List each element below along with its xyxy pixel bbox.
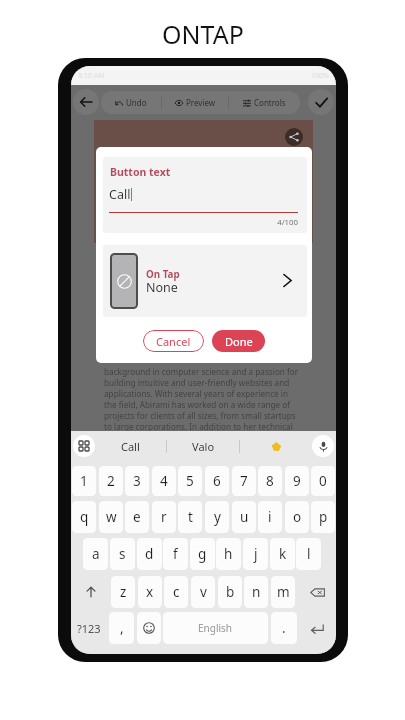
button[interactable]: z bbox=[111, 576, 135, 608]
button[interactable]: o bbox=[285, 501, 309, 533]
button[interactable]: t bbox=[178, 501, 202, 533]
button[interactable]: Valo bbox=[167, 431, 239, 461]
button[interactable]: Enter bbox=[299, 612, 335, 644]
staticText: m bbox=[277, 583, 290, 601]
staticText: c bbox=[173, 583, 180, 601]
staticText: y bbox=[214, 508, 221, 526]
button[interactable]: x bbox=[138, 576, 162, 608]
button[interactable]: Shift bbox=[73, 576, 108, 608]
staticText: Preview bbox=[186, 97, 216, 108]
button[interactable]: j bbox=[243, 538, 268, 570]
button[interactable]: Preview bbox=[162, 91, 228, 114]
button[interactable]: 4 bbox=[152, 466, 176, 496]
button[interactable]: 6 bbox=[205, 466, 229, 496]
staticText: s bbox=[119, 545, 126, 563]
button[interactable]: s bbox=[110, 538, 135, 570]
button[interactable]: 0 bbox=[311, 466, 335, 496]
button[interactable]: g bbox=[190, 538, 215, 570]
staticText: b bbox=[226, 583, 235, 601]
staticText: 6 bbox=[213, 472, 221, 490]
button[interactable]: Emoji bbox=[137, 612, 161, 644]
staticText: z bbox=[120, 583, 127, 601]
staticText: e bbox=[133, 508, 141, 526]
button[interactable]: Done bbox=[212, 330, 265, 352]
staticText: 5 bbox=[186, 472, 194, 490]
button[interactable]: m bbox=[271, 576, 295, 608]
staticText: n bbox=[252, 583, 261, 601]
staticText: None bbox=[146, 279, 178, 296]
staticText: 2 bbox=[107, 472, 115, 490]
button[interactable]: Share bbox=[285, 128, 303, 146]
staticText: Undo bbox=[126, 97, 147, 108]
staticText: 8 bbox=[266, 472, 274, 490]
staticText: Valo bbox=[192, 439, 215, 454]
staticText: o bbox=[293, 508, 302, 526]
staticText: Done bbox=[225, 334, 253, 349]
button[interactable]: l bbox=[296, 538, 321, 570]
button[interactable]: On Tap bbox=[103, 245, 307, 317]
button[interactable]: 7 bbox=[232, 466, 256, 496]
button[interactable]: i bbox=[258, 501, 282, 533]
staticText: l bbox=[307, 545, 311, 563]
button[interactable]: Undo bbox=[101, 91, 161, 114]
button[interactable]: e bbox=[125, 501, 149, 533]
button[interactable]: Back bbox=[73, 89, 99, 115]
button[interactable]: . bbox=[271, 612, 297, 644]
staticText: x bbox=[146, 583, 154, 601]
button[interactable]: r bbox=[152, 501, 176, 533]
button[interactable]: v bbox=[191, 576, 215, 608]
staticText: 100% bbox=[311, 71, 329, 81]
button[interactable]: 2 bbox=[99, 466, 123, 496]
button[interactable]: d bbox=[137, 538, 162, 570]
button[interactable]: 3 bbox=[125, 466, 149, 496]
button[interactable]: p bbox=[311, 501, 335, 533]
button[interactable]: , bbox=[109, 612, 134, 644]
button[interactable]: q bbox=[72, 501, 96, 533]
button[interactable]: Voice input bbox=[312, 435, 334, 457]
staticText: q bbox=[80, 508, 89, 526]
button[interactable]: ?123 bbox=[72, 612, 106, 644]
button[interactable]: 8 bbox=[258, 466, 282, 496]
staticText: t bbox=[188, 508, 193, 526]
button[interactable]: k bbox=[270, 538, 295, 570]
button[interactable]: Call bbox=[95, 431, 166, 461]
button[interactable]: y bbox=[205, 501, 229, 533]
staticText: Cancel bbox=[156, 334, 191, 349]
button[interactable]: b bbox=[218, 576, 242, 608]
button[interactable]: w bbox=[99, 501, 123, 533]
staticText: w bbox=[106, 508, 117, 526]
staticText: English bbox=[198, 621, 233, 635]
button[interactable]: 5 bbox=[178, 466, 202, 496]
staticText: applications. With several years of expe… bbox=[104, 388, 288, 399]
button[interactable]: Backspace bbox=[299, 576, 335, 608]
staticText: On Tap bbox=[146, 268, 180, 281]
staticText: 0 bbox=[319, 472, 327, 490]
button[interactable]: Clipboard bbox=[73, 435, 95, 457]
button[interactable]: Confirm bbox=[308, 89, 334, 115]
staticText: to large corporations. In addition to he… bbox=[104, 421, 293, 432]
button[interactable]: 9 bbox=[285, 466, 309, 496]
staticText: j bbox=[254, 545, 258, 563]
staticText: v bbox=[200, 583, 207, 601]
staticText: the field, Abirami has worked on a wide … bbox=[104, 399, 291, 410]
button[interactable]: Sticker bbox=[240, 431, 312, 461]
button[interactable]: 1 bbox=[72, 466, 96, 496]
button[interactable]: a bbox=[83, 538, 108, 570]
staticText: p bbox=[319, 508, 328, 526]
button[interactable]: h bbox=[216, 538, 241, 570]
staticText: f bbox=[173, 545, 178, 563]
staticText: 9 bbox=[293, 472, 301, 490]
button[interactable]: c bbox=[164, 576, 188, 608]
button[interactable]: English bbox=[163, 612, 268, 644]
button[interactable]: Cancel bbox=[143, 330, 204, 352]
staticText: ?123 bbox=[77, 621, 101, 636]
staticText: u bbox=[240, 508, 249, 526]
button[interactable]: u bbox=[232, 501, 256, 533]
button[interactable]: Controls bbox=[229, 91, 300, 114]
button[interactable]: f bbox=[163, 538, 188, 570]
staticText: 4 bbox=[160, 472, 168, 490]
staticText: 1 bbox=[80, 472, 88, 490]
staticText: h bbox=[224, 545, 233, 563]
staticText: g bbox=[198, 545, 207, 563]
button[interactable]: n bbox=[244, 576, 268, 608]
